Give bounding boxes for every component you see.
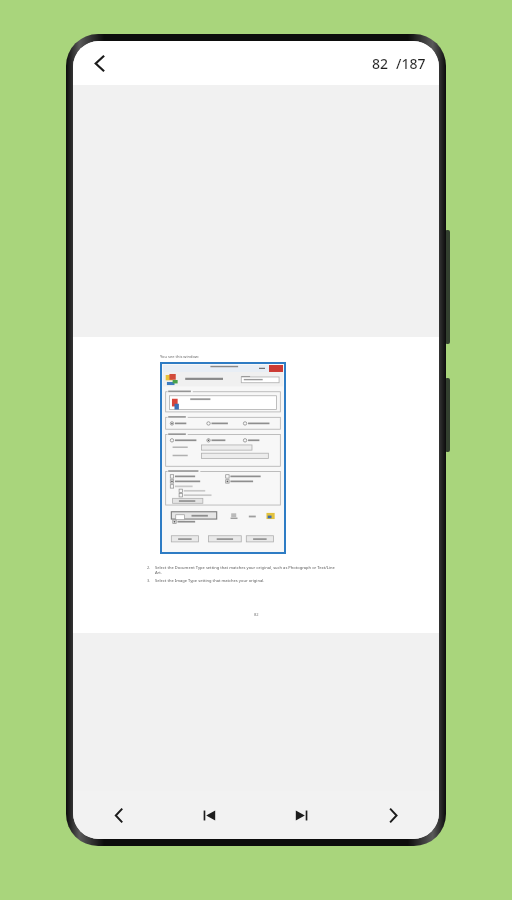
button[interactable]: Last page bbox=[255, 791, 347, 839]
staticText: Art. bbox=[155, 570, 162, 575]
staticText: 82 bbox=[254, 612, 259, 617]
staticText: 2. bbox=[147, 565, 151, 570]
button[interactable]: 82 bbox=[372, 54, 426, 73]
button[interactable]: First page bbox=[164, 791, 255, 839]
button[interactable]: Next page bbox=[347, 791, 439, 839]
button[interactable]: Previous page bbox=[73, 791, 164, 839]
staticText: Select the Document Type setting that ma… bbox=[155, 565, 335, 570]
staticText: You see this window: bbox=[160, 354, 200, 359]
staticText: 82 bbox=[372, 54, 389, 73]
staticText: Select the Image Type setting that match… bbox=[155, 578, 265, 583]
staticText: 3. bbox=[147, 578, 151, 583]
button[interactable]: Back bbox=[79, 43, 119, 83]
staticText: /187 bbox=[396, 54, 426, 73]
